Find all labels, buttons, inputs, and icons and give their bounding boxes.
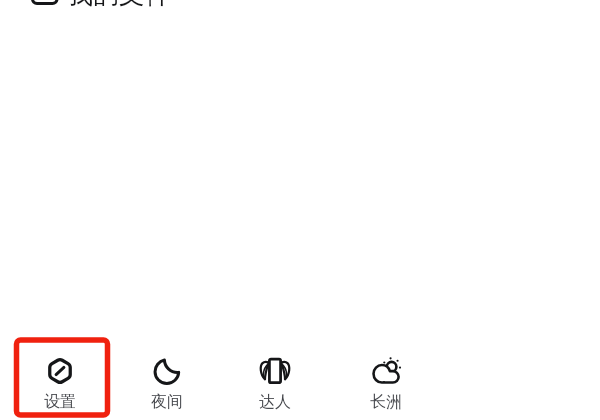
button[interactable]: 夜间 bbox=[129, 358, 205, 412]
staticText: 设置 bbox=[44, 392, 76, 412]
button[interactable]: 长洲 bbox=[348, 358, 424, 412]
button[interactable]: 达人 bbox=[237, 358, 313, 412]
staticText: 长洲 bbox=[370, 392, 402, 412]
button[interactable]: 设置 bbox=[22, 358, 98, 412]
staticText: 夜间 bbox=[151, 392, 183, 412]
staticText: 我的文件 bbox=[67, 0, 171, 11]
button[interactable]: 我的文件 bbox=[0, 0, 600, 6]
staticText: 达人 bbox=[259, 392, 291, 412]
